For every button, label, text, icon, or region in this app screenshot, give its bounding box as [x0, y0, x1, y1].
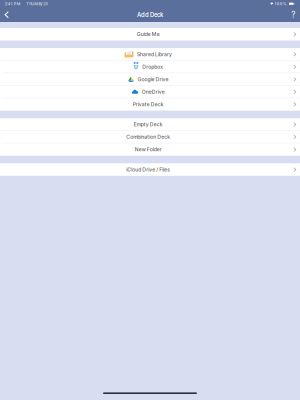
staticText: Thu May 23 [26, 1, 47, 6]
staticText: 100% [275, 1, 287, 6]
button[interactable]: Empty Deck [0, 118, 300, 131]
staticText: New Folder [135, 146, 162, 152]
staticText: Private Deck [133, 101, 164, 107]
button[interactable]: iCloud Drive / Files [0, 163, 300, 176]
button[interactable]: Guide Me [0, 28, 300, 40]
button[interactable]: Dropbox [0, 61, 300, 73]
button[interactable]: New Folder [0, 143, 300, 156]
button[interactable]: Combination Deck [0, 131, 300, 143]
button[interactable]: Back [0, 8, 13, 22]
button[interactable]: Private Deck [0, 98, 300, 111]
staticText: ? [291, 10, 295, 20]
staticText: Guide Me [137, 31, 160, 37]
staticText: Dropbox [142, 64, 163, 70]
staticText: OneDrive [142, 89, 165, 95]
staticText: iCloud Drive / Files [126, 166, 170, 173]
button[interactable]: Shared Library [0, 48, 300, 61]
staticText: Add Deck [137, 11, 163, 18]
staticText: Shared Library [137, 51, 172, 57]
staticText: Empty Deck [134, 121, 163, 127]
staticText: Google Drive [137, 76, 168, 82]
button[interactable]: Google Drive [0, 73, 300, 86]
button[interactable]: OneDrive [0, 86, 300, 98]
staticText: Combination Deck [126, 134, 170, 140]
staticText: 2:41 PM [5, 1, 21, 6]
button[interactable]: Help [287, 8, 300, 22]
